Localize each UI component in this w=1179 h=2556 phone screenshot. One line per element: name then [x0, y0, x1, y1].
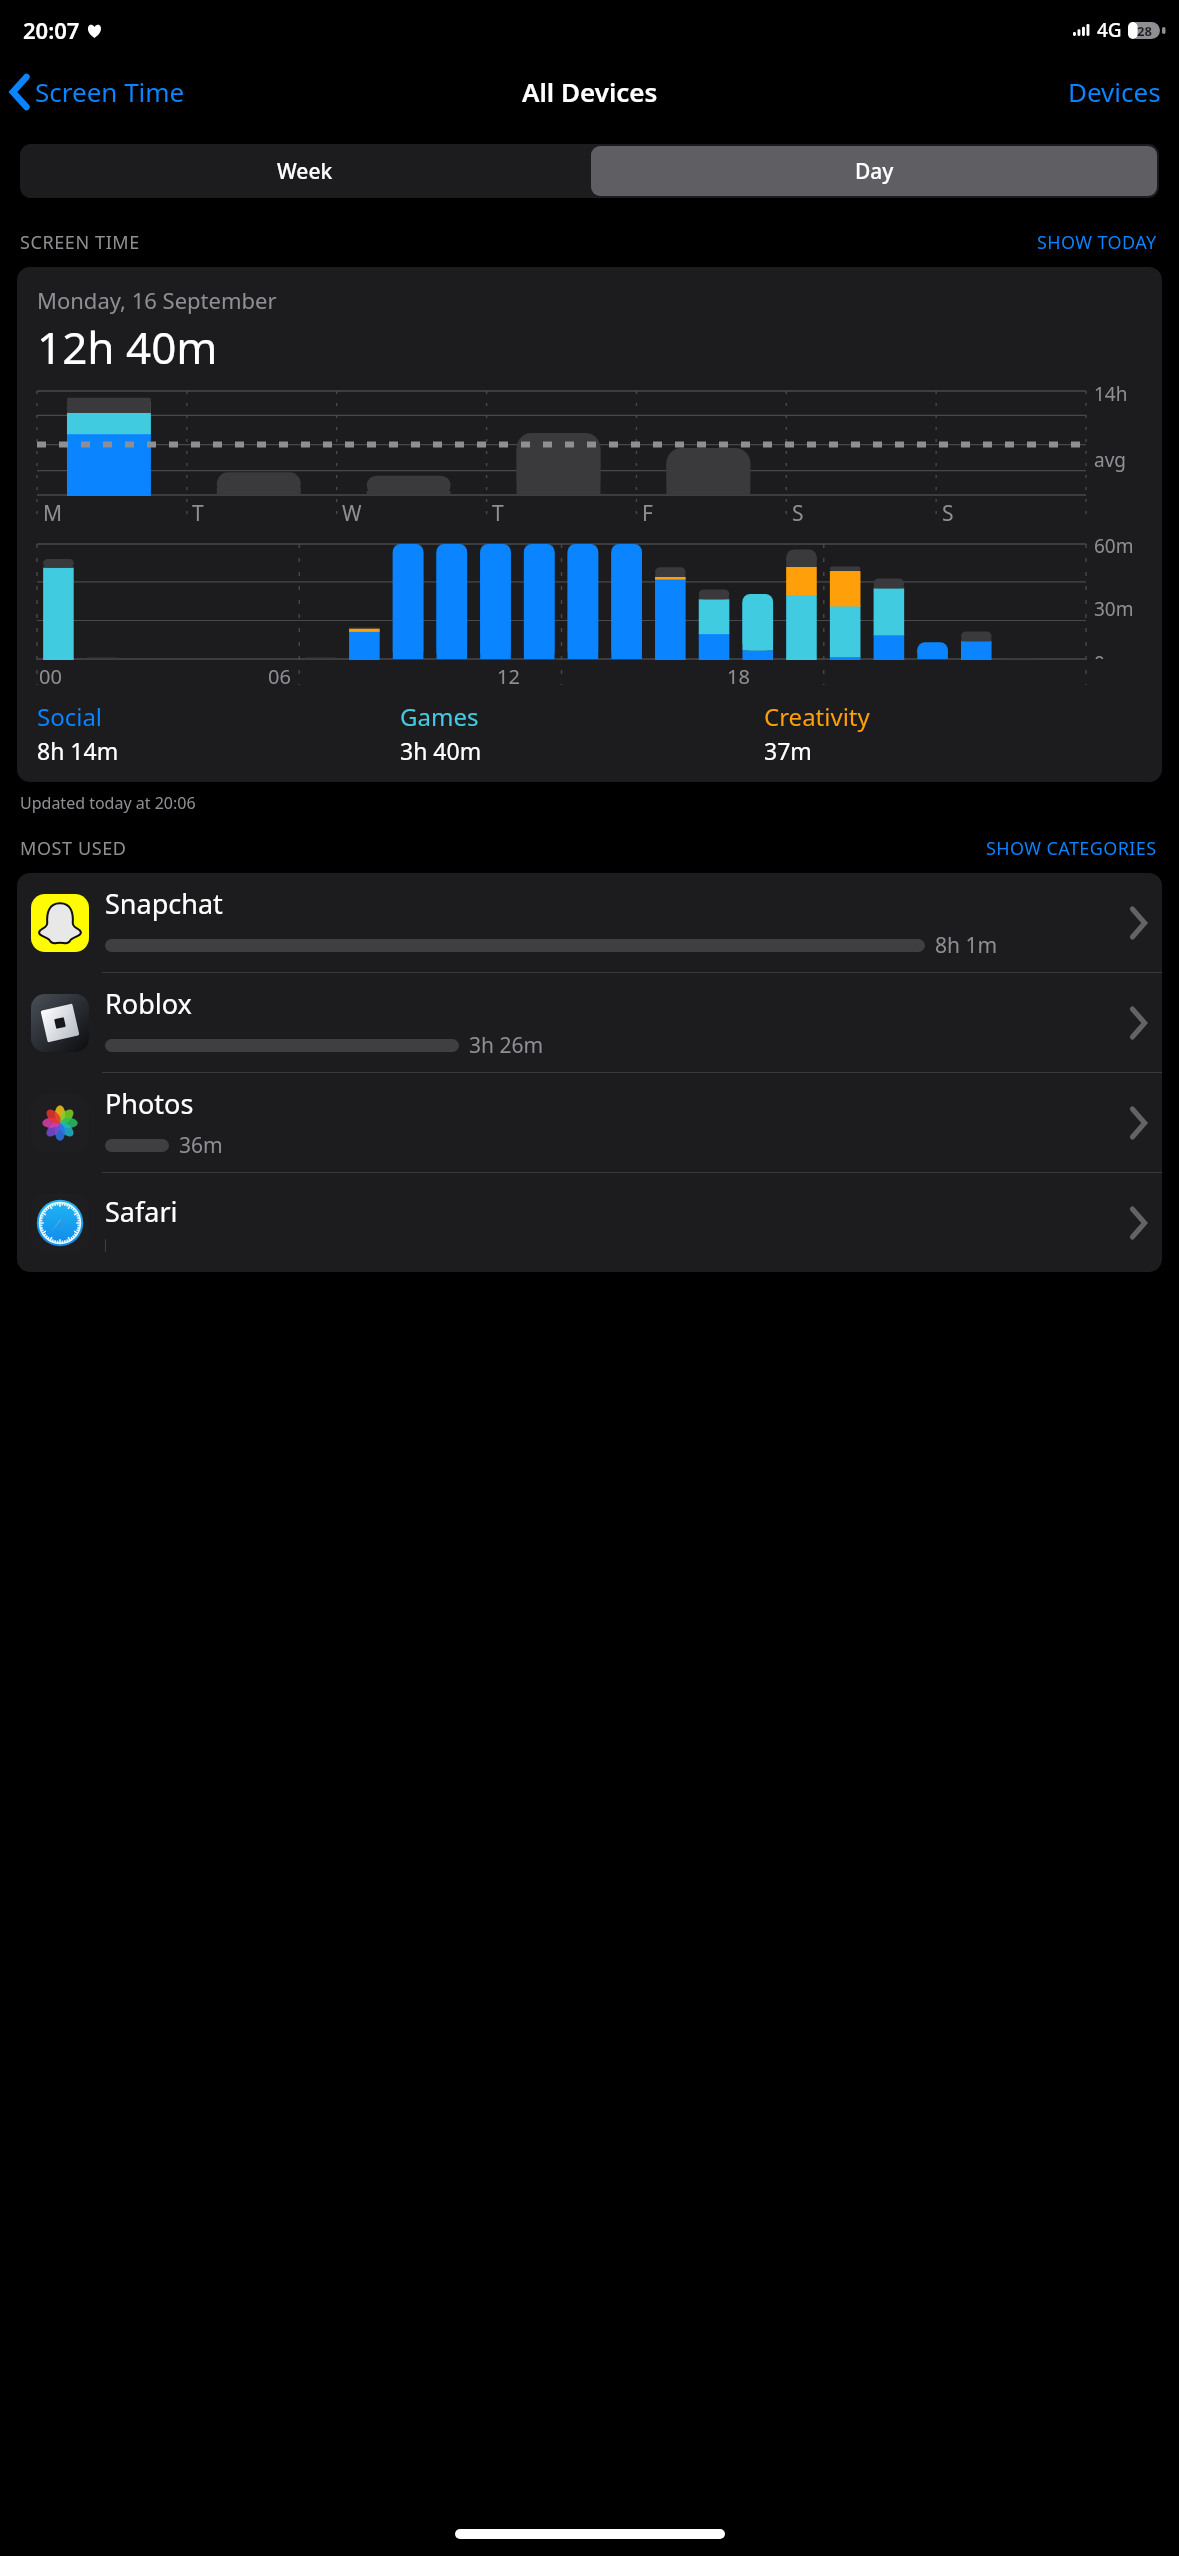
staticText: 30m: [1094, 596, 1134, 622]
staticText: Photos: [105, 1085, 194, 1122]
button[interactable]: Safari: [17, 1173, 1162, 1272]
staticText: 12: [497, 663, 520, 690]
staticText: 36m: [179, 1131, 223, 1160]
staticText: 8h 1m: [935, 931, 998, 960]
button[interactable]: Photos: [17, 1073, 1162, 1172]
staticText: 60m: [1094, 533, 1134, 559]
staticText: 28: [1137, 22, 1152, 39]
staticText: SCREEN TIME: [20, 230, 140, 255]
staticText: S: [792, 499, 804, 528]
button[interactable]: Social: [37, 700, 400, 766]
button[interactable]: Day: [591, 146, 1157, 196]
staticText: Safari: [105, 1193, 178, 1230]
staticText: M: [43, 499, 63, 528]
button[interactable]: Week: [20, 144, 589, 198]
other: Open Roblox details: [1130, 1009, 1146, 1037]
staticText: MOST USED: [20, 836, 127, 861]
button[interactable]: Screen Time: [0, 74, 193, 109]
staticText: T: [192, 499, 204, 528]
staticText: 4G: [1097, 17, 1122, 43]
staticText: Screen Time: [35, 74, 185, 109]
staticText: All Devices: [522, 74, 658, 109]
staticText: Roblox: [105, 985, 192, 1022]
staticText: 14h: [1094, 381, 1128, 407]
button[interactable]: Devices: [1050, 68, 1179, 115]
staticText: S: [942, 499, 954, 528]
staticText: Day: [855, 157, 894, 186]
staticText: Snapchat: [105, 885, 223, 922]
other: Open Safari details: [1130, 1209, 1146, 1237]
staticText: W: [342, 499, 362, 528]
staticText: F: [642, 499, 653, 528]
staticText: Week: [277, 157, 333, 186]
staticText: Games: [400, 700, 479, 733]
staticText: 0: [1094, 650, 1105, 659]
staticText: avg: [1094, 447, 1126, 473]
button[interactable]: Roblox: [17, 973, 1162, 1072]
button[interactable]: Monday, 16 September: [17, 267, 1162, 782]
button[interactable]: SHOW CATEGORIES: [982, 832, 1161, 865]
staticText: Social: [37, 700, 103, 733]
other: Open Snapchat details: [1130, 909, 1146, 937]
staticText: Updated today at 20:06: [20, 792, 196, 814]
button[interactable]: Games: [400, 700, 764, 766]
staticText: 20:07: [23, 15, 80, 45]
staticText: T: [492, 499, 504, 528]
other: Open Photos details: [1130, 1109, 1146, 1137]
button[interactable]: Creativity: [764, 700, 1128, 766]
staticText: 18: [727, 663, 750, 690]
staticText: 37m: [764, 735, 812, 766]
staticText: Monday, 16 September: [37, 285, 277, 315]
staticText: 06: [268, 663, 291, 690]
staticText: 12h 40m: [37, 317, 218, 377]
staticText: 00: [39, 663, 62, 690]
staticText: 3h 40m: [400, 735, 482, 766]
staticText: 8h 14m: [37, 735, 119, 766]
button[interactable]: SHOW TODAY: [1033, 226, 1161, 259]
button[interactable]: Snapchat: [17, 873, 1162, 972]
staticText: Creativity: [764, 700, 870, 733]
staticText: 3h 26m: [469, 1031, 544, 1060]
